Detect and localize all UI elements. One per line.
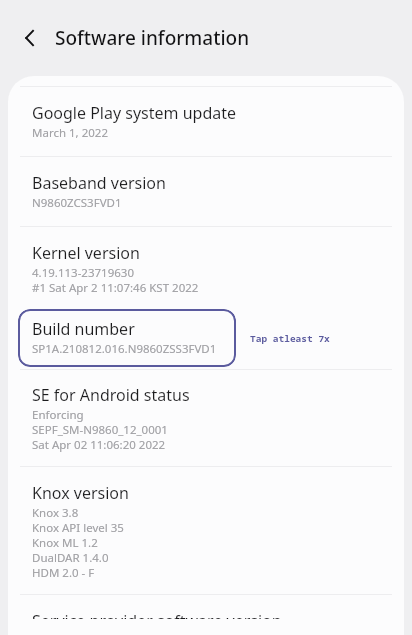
staticText: Software information: [55, 25, 250, 51]
staticText: Knox API level 35: [32, 520, 124, 535]
staticText: Tap atleast 7x: [250, 332, 330, 345]
button[interactable]: Knox version: [8, 467, 404, 594]
staticText: Baseband version: [32, 173, 166, 193]
button[interactable]: Navigate up: [16, 23, 46, 53]
staticText: SE for Android status: [32, 385, 190, 405]
button[interactable]: Baseband version: [8, 157, 404, 226]
staticText: Knox 3.8: [32, 505, 79, 520]
staticText: Enforcing: [32, 407, 84, 422]
staticText: Google Play system update: [32, 103, 237, 123]
staticText: SP1A.210812.016.N9860ZSS3FVD1: [32, 341, 217, 356]
staticText: 4.19.113-23719630: [32, 265, 134, 280]
button[interactable]: Kernel version: [8, 227, 404, 309]
staticText: SEPF_SM-N9860_12_0001: [32, 422, 168, 437]
staticText: #1 Sat Apr 2 11:07:46 KST 2022: [32, 280, 199, 295]
button[interactable]: Build number: [18, 309, 236, 367]
staticText: Sat Apr 02 11:06:20 2022: [32, 437, 166, 452]
staticText: N9860ZCS3FVD1: [32, 195, 122, 210]
staticText: Knox ML 1.2: [32, 535, 98, 550]
staticText: March 1, 2022: [32, 125, 108, 140]
button[interactable]: Service provider software version: [8, 595, 404, 635]
staticText: Kernel version: [32, 243, 140, 263]
staticText: Service provider software version: [32, 611, 282, 619]
staticText: Build number: [32, 319, 135, 339]
button[interactable]: SE for Android status: [8, 370, 404, 466]
staticText: HDM 2.0 - F: [32, 565, 95, 580]
button[interactable]: Google Play system update: [8, 87, 404, 156]
staticText: DualDAR 1.4.0: [32, 550, 109, 565]
staticText: Knox version: [32, 483, 129, 503]
